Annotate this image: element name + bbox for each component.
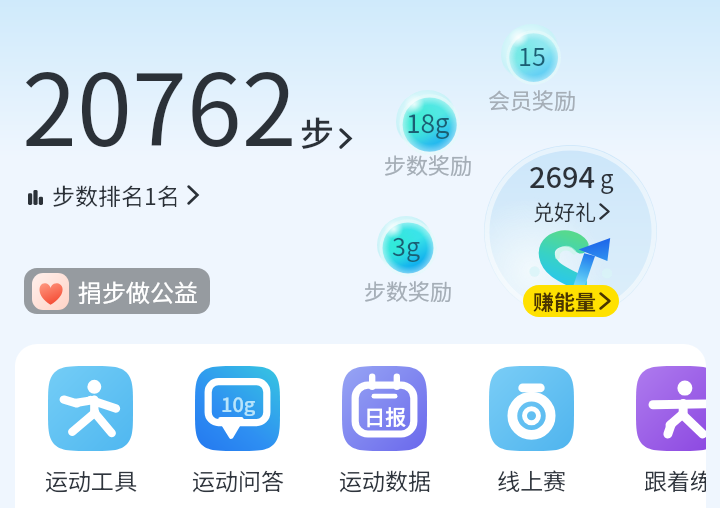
staticText: 10g	[221, 389, 256, 418]
staticText: g	[600, 160, 614, 195]
button[interactable]: 运动工具	[36, 366, 145, 496]
button[interactable]: 日报	[330, 366, 439, 496]
staticText: 捐步做公益	[78, 274, 198, 309]
button[interactable]: 跟着练	[624, 366, 706, 496]
staticText: 20762	[22, 31, 297, 174]
button[interactable]: 10g	[183, 366, 292, 496]
button[interactable]: 赚能量	[523, 285, 619, 317]
staticText: 日报	[364, 401, 406, 431]
staticText: 2694	[529, 154, 596, 196]
staticText: 步数奖励	[384, 148, 473, 180]
button[interactable]: 线上赛	[477, 366, 586, 496]
button[interactable]: 步数排名1名	[28, 178, 199, 211]
staticText: 线上赛	[497, 463, 566, 496]
staticText: 跟着练	[644, 463, 706, 496]
button[interactable]: 15	[501, 24, 562, 85]
button[interactable]: 3g	[377, 216, 435, 274]
staticText: 赚能量	[533, 286, 596, 316]
staticText: 运动数据	[339, 463, 431, 496]
button[interactable]: 2694	[484, 145, 657, 318]
staticText: 运动工具	[45, 463, 137, 496]
staticText: 步数排名1名	[52, 178, 180, 211]
staticText: 运动问答	[192, 463, 284, 496]
staticText: 兑好礼	[533, 196, 596, 226]
staticText: 18g	[406, 103, 450, 141]
staticText: 15	[518, 37, 546, 73]
staticText: 3g	[392, 227, 420, 263]
staticText: 步数奖励	[364, 274, 453, 306]
button[interactable]: 20762	[22, 31, 352, 174]
button[interactable]: 捐步做公益	[24, 268, 210, 314]
staticText: 会员奖励	[488, 83, 577, 115]
staticText: 步	[300, 107, 334, 156]
button[interactable]: 18g	[396, 90, 459, 153]
